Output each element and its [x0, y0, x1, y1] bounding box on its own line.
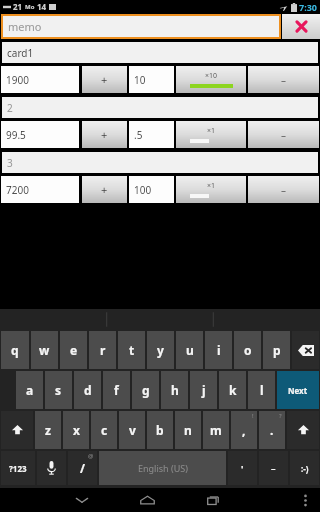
staticText: ×1: [207, 181, 216, 191]
button[interactable]: r: [89, 331, 116, 369]
staticText: j: [202, 382, 206, 398]
button[interactable]: p: [263, 331, 290, 369]
button[interactable]: l: [248, 371, 275, 409]
button[interactable]: v: [119, 411, 145, 449]
button[interactable]: ×1: [176, 121, 246, 148]
staticText: c: [101, 422, 108, 438]
button[interactable]: +: [82, 66, 127, 93]
button[interactable]: ,: [231, 411, 257, 449]
button[interactable]: y: [147, 331, 174, 369]
button[interactable]: u: [176, 331, 203, 369]
button[interactable]: +: [82, 121, 127, 148]
button[interactable]: Recent apps: [195, 488, 232, 512]
button[interactable]: t: [118, 331, 145, 369]
button[interactable]: a: [16, 371, 43, 409]
button[interactable]: g: [132, 371, 159, 409]
button[interactable]: h: [161, 371, 188, 409]
button[interactable]: e: [60, 331, 87, 369]
button[interactable]: +: [82, 176, 127, 203]
button[interactable]: –: [248, 176, 319, 203]
button[interactable]: Hide keyboard: [63, 488, 100, 512]
button[interactable]: 10: [129, 66, 174, 93]
staticText: i: [217, 342, 221, 358]
staticText: –: [271, 462, 276, 474]
button[interactable]: k: [219, 371, 246, 409]
button[interactable]: ×1: [176, 176, 246, 203]
staticText: @: [88, 452, 94, 460]
button[interactable]: Home: [129, 488, 166, 512]
staticText: r: [100, 342, 106, 358]
staticText: 10: [134, 73, 146, 87]
button[interactable]: Clear: [282, 14, 320, 39]
staticText: 7200: [6, 183, 29, 197]
button[interactable]: 99.5: [1, 121, 79, 148]
staticText: +: [101, 72, 108, 87]
button[interactable]: w: [31, 331, 58, 369]
button[interactable]: j: [190, 371, 217, 409]
button[interactable]: More options: [291, 488, 320, 512]
staticText: card1: [7, 46, 34, 60]
staticText: ,: [242, 422, 246, 438]
button[interactable]: 2: [2, 97, 318, 118]
button[interactable]: card1: [2, 42, 318, 63]
button[interactable]: Space: [99, 451, 226, 485]
staticText: x: [73, 422, 80, 438]
staticText: ': [241, 462, 244, 474]
button[interactable]: /: [68, 451, 97, 485]
staticText: ?: [279, 412, 282, 420]
button[interactable]: Backspace: [292, 331, 319, 369]
staticText: –: [281, 73, 286, 87]
button[interactable]: Shift: [287, 411, 319, 449]
staticText: 1900: [6, 73, 29, 87]
staticText: e: [70, 342, 78, 358]
button[interactable]: –: [259, 451, 288, 485]
button[interactable]: 100: [129, 176, 174, 203]
button[interactable]: b: [147, 411, 173, 449]
staticText: z: [45, 422, 51, 438]
button[interactable]: Next: [277, 371, 319, 409]
button[interactable]: i: [205, 331, 232, 369]
button[interactable]: ×10: [176, 66, 246, 93]
staticText: +: [101, 182, 108, 197]
staticText: 3: [7, 156, 13, 170]
button[interactable]: ': [228, 451, 257, 485]
staticText: t: [129, 342, 135, 358]
staticText: :-): [301, 463, 309, 474]
button[interactable]: f: [103, 371, 130, 409]
button[interactable]: ?123: [1, 451, 35, 485]
staticText: Mo: [25, 3, 35, 11]
button[interactable]: m: [203, 411, 229, 449]
staticText: d: [84, 382, 92, 398]
button[interactable]: memo: [3, 16, 279, 37]
button[interactable]: :-): [290, 451, 319, 485]
staticText: l: [260, 382, 264, 398]
button[interactable]: .: [259, 411, 285, 449]
staticText: +: [101, 127, 108, 142]
button[interactable]: –: [248, 66, 319, 93]
button[interactable]: n: [175, 411, 201, 449]
button[interactable]: 7200: [1, 176, 79, 203]
button[interactable]: .5: [129, 121, 174, 148]
staticText: !: [252, 412, 254, 420]
button[interactable]: Voice input: [37, 451, 66, 485]
button[interactable]: o: [234, 331, 261, 369]
button[interactable]: 1900: [1, 66, 79, 93]
staticText: h: [171, 382, 179, 398]
staticText: 100: [134, 183, 152, 197]
staticText: m: [210, 422, 222, 438]
staticText: f: [114, 382, 119, 398]
button[interactable]: z: [35, 411, 61, 449]
button[interactable]: d: [74, 371, 101, 409]
staticText: a: [26, 382, 34, 398]
staticText: –: [281, 183, 286, 197]
button[interactable]: q: [1, 331, 29, 369]
staticText: s: [55, 382, 62, 398]
button[interactable]: –: [248, 121, 319, 148]
button[interactable]: Shift: [1, 411, 33, 449]
button[interactable]: s: [45, 371, 72, 409]
button[interactable]: x: [63, 411, 89, 449]
button[interactable]: 3: [2, 152, 318, 173]
button[interactable]: c: [91, 411, 117, 449]
staticText: w: [39, 342, 50, 358]
staticText: o: [244, 342, 252, 358]
